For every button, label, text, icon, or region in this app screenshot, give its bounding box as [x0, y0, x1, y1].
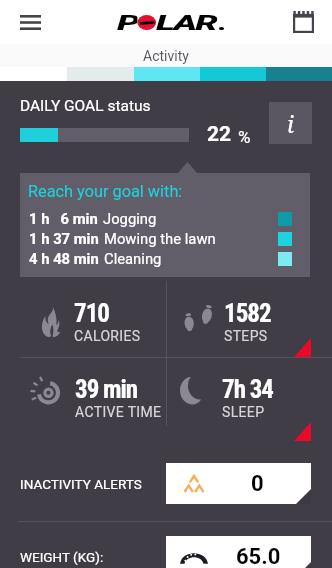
staticText: 39 min [75, 375, 138, 404]
staticText: 1 h 37 min [29, 230, 99, 247]
staticText: Activity [143, 48, 189, 64]
staticText: 7h 34 [222, 375, 273, 404]
staticText: DAILY GOAL status [20, 97, 151, 115]
staticText: 1 h 6 min [29, 210, 98, 227]
staticText: 710 [74, 299, 109, 328]
button[interactable]: 7h 34 [166, 358, 332, 441]
staticText: P [117, 11, 137, 33]
staticText: i [287, 108, 294, 139]
button[interactable]: Menu [12, 4, 48, 40]
staticText: Mowing the lawn [104, 230, 216, 247]
button[interactable]: WEIGHT (KG): [0, 519, 332, 568]
staticText: ACTIVE TIME [75, 404, 162, 420]
staticText: WEIGHT (KG): [20, 549, 104, 565]
staticText: INACTIVITY ALERTS [20, 476, 142, 492]
staticText: Cleaning [104, 250, 162, 267]
button[interactable]: 39 min [0, 358, 166, 441]
staticText: SLEEP [222, 404, 265, 420]
staticText: Reach your goal with: [28, 182, 183, 201]
staticText: 0 [251, 471, 264, 497]
staticText: STEPS [224, 328, 268, 344]
staticText: 4 h 48 min [29, 250, 99, 267]
button[interactable]: 710 [0, 281, 166, 357]
button[interactable]: 1582 [166, 281, 332, 357]
button[interactable]: Calendar [285, 4, 321, 40]
staticText: LAR [156, 11, 217, 33]
staticText: 22 [207, 122, 232, 147]
staticText: % [238, 127, 251, 147]
staticText: CALORIES [74, 328, 141, 344]
button[interactable]: Info [269, 102, 312, 144]
button[interactable]: INACTIVITY ALERTS [0, 446, 332, 521]
staticText: 1582 [224, 299, 271, 328]
staticText: Jogging [103, 210, 157, 227]
staticText: 65.0 [236, 544, 281, 568]
